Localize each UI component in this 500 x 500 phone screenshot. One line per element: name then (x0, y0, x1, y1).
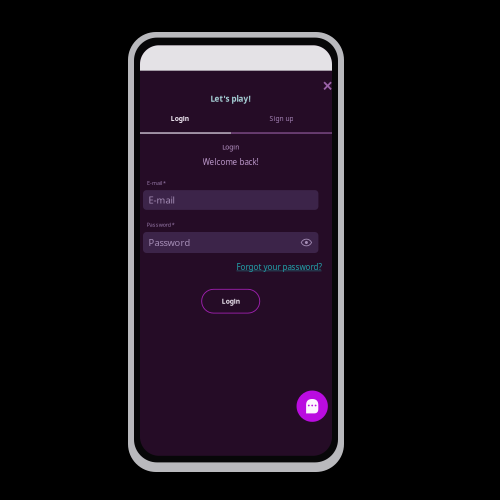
staticText: Password (149, 236, 191, 249)
staticText: Password * (147, 221, 175, 228)
staticText: Forgot your password? (236, 261, 321, 272)
staticText: E-mail (149, 194, 175, 206)
button[interactable]: Sign up (231, 109, 332, 127)
staticText: Let's play! (210, 93, 250, 104)
staticText: Sign up (269, 114, 293, 123)
staticText: Login (171, 114, 189, 123)
staticText: Login (222, 297, 240, 306)
button[interactable]: Login (134, 109, 225, 127)
staticText: Login (222, 143, 239, 151)
button[interactable]: Close (318, 76, 338, 96)
button[interactable]: Forgot your password? (236, 261, 321, 272)
button[interactable]: Chat support (296, 391, 328, 422)
button[interactable]: Show password (301, 239, 312, 246)
staticText: E-mail * (147, 179, 166, 186)
staticText: Welcome back! (203, 156, 259, 167)
button[interactable]: Login (202, 289, 260, 313)
